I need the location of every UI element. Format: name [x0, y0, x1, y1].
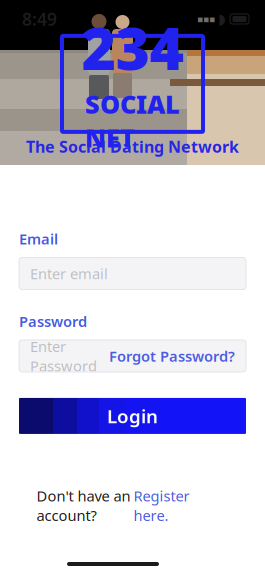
button[interactable]: Forgot Password?: [109, 346, 235, 366]
staticText: Register here.: [133, 486, 189, 525]
staticText: 234: [81, 8, 183, 86]
staticText: Enter email: [30, 264, 108, 283]
staticText: ◗: [218, 11, 226, 27]
staticText: Don't have an account?: [36, 486, 130, 525]
button[interactable]: Don't have an account?: [26, 482, 199, 529]
staticText: Forgot Password?: [109, 346, 235, 366]
staticText: The Social Dating Network: [26, 136, 239, 157]
staticText: 8:49: [22, 7, 57, 30]
staticText: Email: [19, 229, 58, 248]
button[interactable]: Login: [19, 398, 246, 434]
staticText: Enter Password: [30, 336, 97, 375]
staticText: Password: [19, 311, 87, 331]
staticText: ▪▪▪: [197, 14, 215, 24]
staticText: SOCIAL NET: [85, 87, 180, 154]
staticText: Login: [107, 404, 158, 428]
